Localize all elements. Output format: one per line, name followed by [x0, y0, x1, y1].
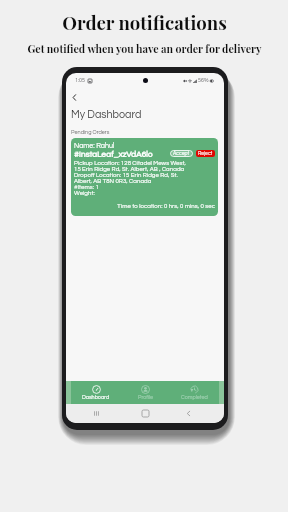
- staticText: Profile: [138, 395, 153, 401]
- staticText: Pickup Location: 128 Citadel Mews West,: [74, 160, 186, 166]
- button[interactable]: Reject: [196, 150, 215, 157]
- staticText: Name: Rahul: [74, 142, 115, 149]
- staticText: Completed: [181, 395, 208, 401]
- staticText: 15 Erin Ridge Rd, St. Albert, AB , Canad…: [74, 166, 185, 172]
- staticText: #InstaLeaf_xzVdA6lo: [74, 150, 153, 159]
- staticText: My Dashboard: [71, 109, 142, 120]
- button[interactable]: Back: [182, 407, 195, 420]
- staticText: Reject: [198, 151, 213, 156]
- button[interactable]: Name: Rahul: [71, 138, 218, 216]
- staticText: Get notified when you have an order for …: [27, 41, 262, 55]
- staticText: Weight:: [74, 190, 95, 196]
- staticText: 1:05: [75, 78, 85, 84]
- staticText: Accept: [173, 151, 190, 156]
- staticText: Pending Orders: [71, 129, 110, 135]
- button[interactable]: Profile: [121, 381, 170, 404]
- staticText: Dropoff Location: 15 Erin Ridge Rd, St.: [74, 172, 178, 178]
- button[interactable]: Recents: [90, 407, 103, 420]
- staticText: Order notifications: [62, 10, 227, 35]
- staticText: Dashboard: [82, 395, 110, 401]
- button[interactable]: Completed: [170, 381, 219, 404]
- button[interactable]: Dashboard: [71, 381, 121, 404]
- staticText: Albert, AB T8N 0R3, Canada: [74, 178, 152, 184]
- button[interactable]: Home: [139, 407, 152, 420]
- staticText: #Items: 1: [74, 184, 99, 190]
- button[interactable]: Accept: [170, 150, 193, 157]
- button[interactable]: Back: [68, 91, 80, 103]
- staticText: 56%: [198, 78, 209, 84]
- staticText: Time to location: 0 hrs, 0 mins, 0 sec: [71, 203, 215, 209]
